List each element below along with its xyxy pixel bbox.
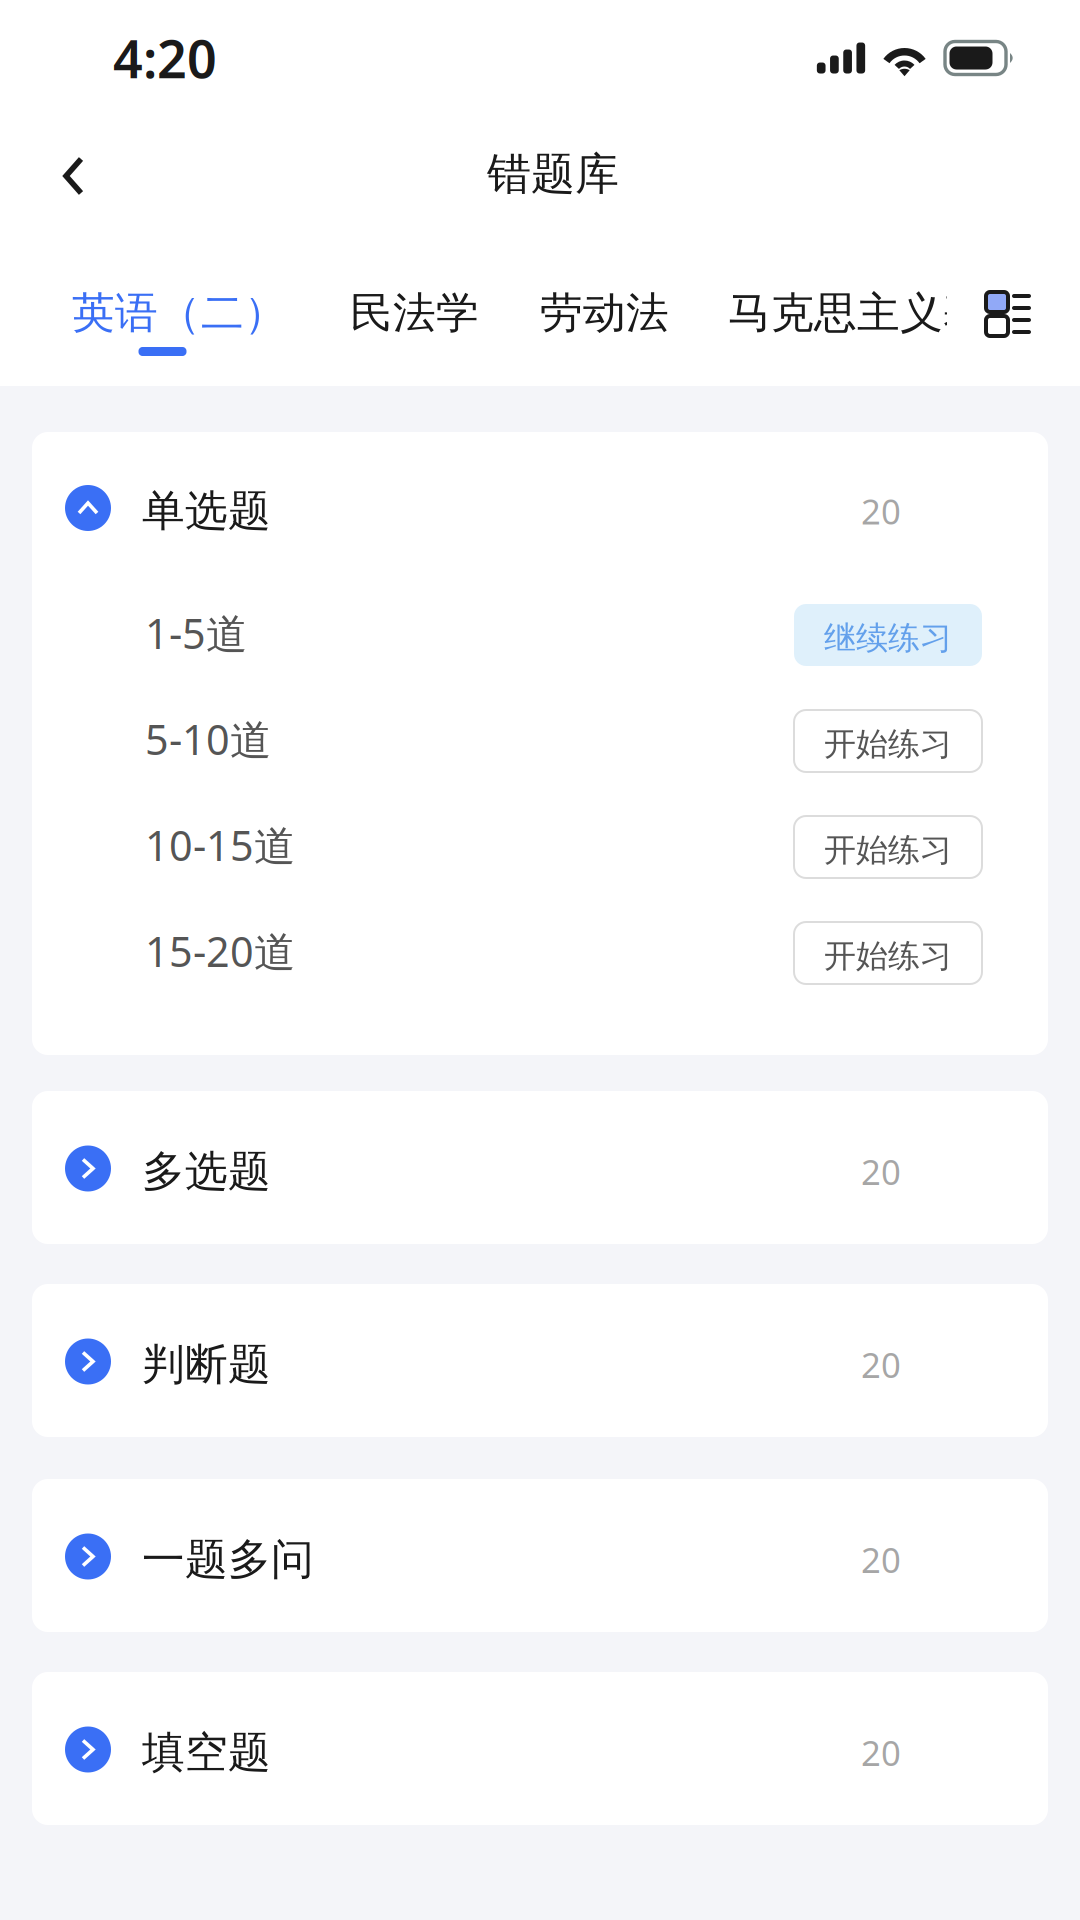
staticText: 劳动法 xyxy=(540,287,669,339)
button[interactable]: 民法学 xyxy=(350,230,468,386)
staticText: 10-15道 xyxy=(145,818,295,872)
staticText: 开始练习 xyxy=(824,724,952,764)
staticText: 一题多问 xyxy=(142,1533,314,1586)
staticText: 4:20 xyxy=(113,23,217,93)
button[interactable]: 劳动法 xyxy=(540,230,668,386)
button[interactable]: 多选题 xyxy=(32,1091,1048,1244)
staticText: 20 xyxy=(861,1341,901,1387)
staticText: 15-20道 xyxy=(145,924,295,978)
button[interactable]: Switch layout xyxy=(963,230,1080,386)
staticText: 20 xyxy=(861,1148,901,1194)
staticText: 民法学 xyxy=(350,287,479,339)
button[interactable]: 一题多问 xyxy=(32,1479,1048,1632)
button[interactable]: 继续练习 xyxy=(794,604,982,666)
button[interactable]: 马克思主义基 xyxy=(728,230,947,386)
button[interactable]: Back xyxy=(0,116,146,230)
staticText: 20 xyxy=(861,488,901,534)
staticText: 开始练习 xyxy=(824,936,952,976)
button[interactable]: 开始练习 xyxy=(794,816,982,878)
button[interactable]: 单选题 xyxy=(32,432,1048,578)
staticText: 20 xyxy=(861,1729,901,1775)
staticText: 多选题 xyxy=(142,1145,271,1198)
staticText: 继续练习 xyxy=(824,618,952,658)
button[interactable]: 开始练习 xyxy=(794,922,982,984)
staticText: 马克思主义基 xyxy=(728,287,986,339)
button[interactable]: 英语（二） xyxy=(72,230,259,386)
button[interactable]: 判断题 xyxy=(32,1284,1048,1437)
staticText: 1-5道 xyxy=(145,606,247,660)
button[interactable]: 填空题 xyxy=(32,1672,1048,1825)
staticText: 单选题 xyxy=(142,485,271,537)
staticText: 5-10道 xyxy=(145,712,271,766)
staticText: 开始练习 xyxy=(824,830,952,870)
staticText: 错题库 xyxy=(487,147,619,201)
staticText: 填空题 xyxy=(142,1726,271,1779)
button[interactable]: 开始练习 xyxy=(794,710,982,772)
staticText: 英语（二） xyxy=(72,287,287,339)
staticText: 20 xyxy=(861,1536,901,1582)
staticText: 判断题 xyxy=(142,1338,271,1391)
